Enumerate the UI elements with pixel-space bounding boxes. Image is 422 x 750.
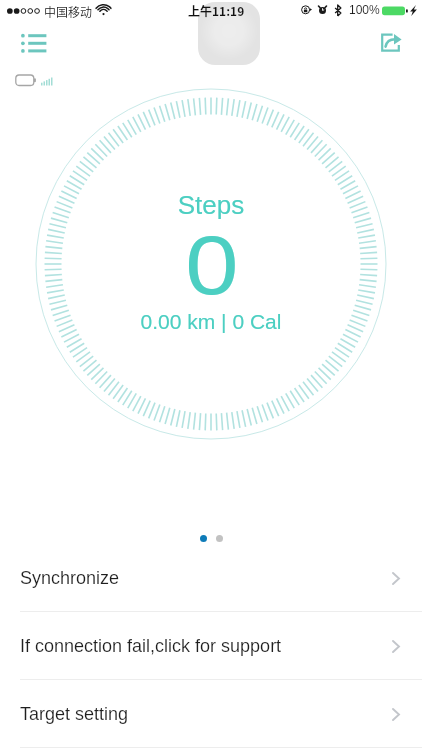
button[interactable]: Target setting xyxy=(0,680,422,748)
button[interactable]: Page 1 xyxy=(200,535,207,542)
staticText: If connection fail,click for support xyxy=(20,636,282,656)
staticText: 0.00 km | 0 Cal xyxy=(0,310,422,333)
staticText: 100% xyxy=(349,3,380,16)
staticText: Target setting xyxy=(20,704,129,724)
button[interactable]: If connection fail,click for support xyxy=(0,612,422,680)
staticText: 中国移动 xyxy=(44,3,93,20)
button[interactable]: Synchronize xyxy=(0,544,422,612)
button[interactable]: Page 2 xyxy=(216,535,223,542)
button[interactable]: Share xyxy=(370,20,414,64)
staticText: 上午11:19 xyxy=(188,2,245,19)
button[interactable]: Menu xyxy=(12,21,56,65)
staticText: Steps xyxy=(0,190,422,219)
staticText: 0 xyxy=(0,218,422,312)
staticText: Synchronize xyxy=(20,568,120,588)
